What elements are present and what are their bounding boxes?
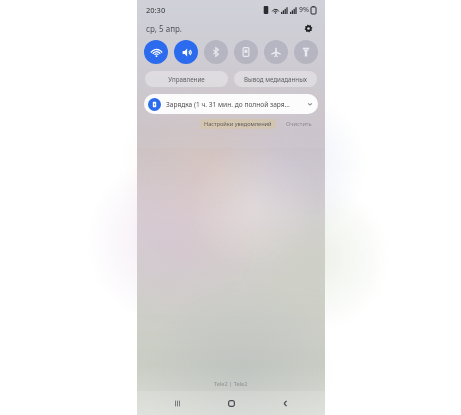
button[interactable]: Зарядка (1 ч. 31 мин. до полной заря... — [144, 94, 318, 114]
button[interactable]: Flashlight — [294, 40, 318, 64]
button[interactable]: Управление — [145, 71, 228, 87]
staticText: Tele2 | Tele2 — [214, 380, 248, 388]
button[interactable]: Очистить — [284, 120, 314, 128]
button[interactable]: Wi-Fi — [144, 40, 168, 64]
staticText: Зарядка (1 ч. 31 мин. до полной заря... — [166, 100, 303, 109]
button[interactable]: Вывод медиаданных — [234, 71, 317, 87]
button[interactable]: Mobile data — [234, 40, 258, 64]
button[interactable] — [306, 100, 314, 108]
staticText: Настройки уведомлений — [204, 120, 272, 128]
staticText: Управление — [168, 75, 205, 83]
button[interactable]: Home — [217, 391, 245, 415]
button[interactable]: Recents — [163, 391, 191, 415]
button[interactable]: Settings — [300, 20, 316, 36]
button[interactable]: Back — [271, 391, 299, 415]
button[interactable]: Настройки уведомлений — [200, 119, 276, 129]
staticText: ср, 5 апр. — [146, 23, 182, 34]
button[interactable]: Bluetooth — [204, 40, 228, 64]
staticText: Очистить — [286, 120, 312, 128]
staticText: Вывод медиаданных — [244, 75, 307, 83]
button[interactable]: Sound — [174, 40, 198, 64]
staticText: 9% — [299, 5, 309, 15]
button[interactable]: Airplane mode — [264, 40, 288, 64]
staticText: 20:30 — [146, 5, 166, 15]
